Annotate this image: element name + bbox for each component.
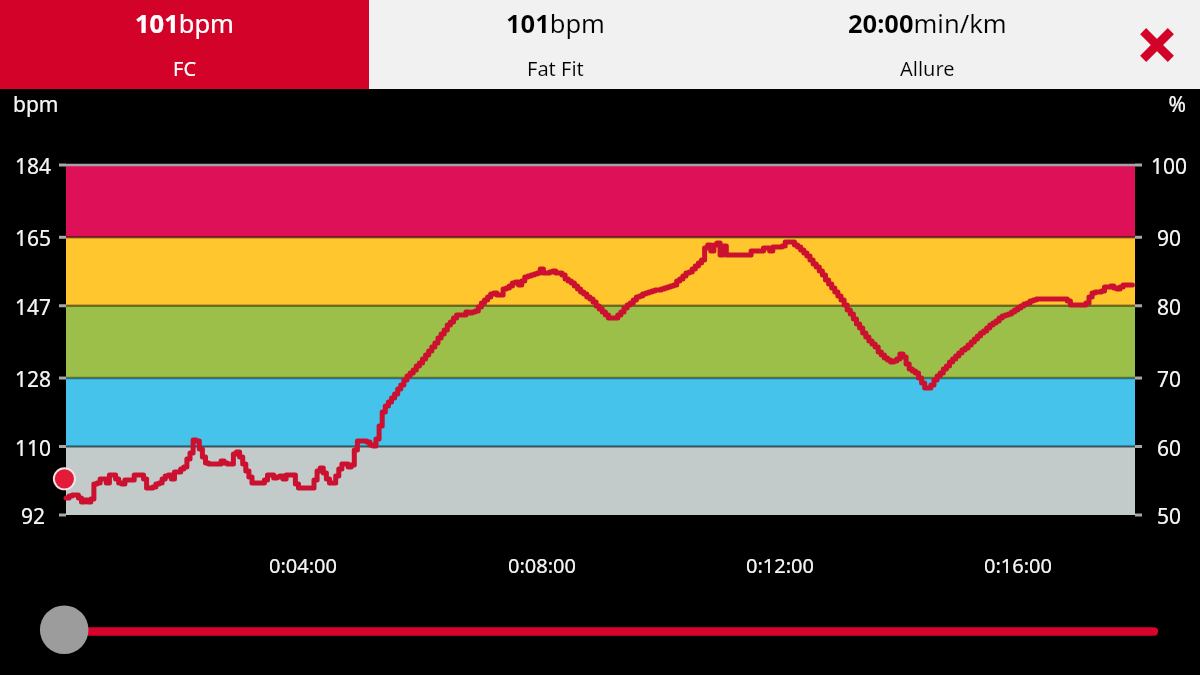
staticText: 0:08:00 [472, 552, 612, 579]
staticText: 50 [1109, 502, 1200, 531]
staticText: 90 [1109, 224, 1200, 253]
staticText: 100 [1109, 152, 1200, 181]
staticText: Allure [900, 55, 955, 82]
button[interactable]: 101bpm [0, 0, 369, 89]
staticText: 60 [1109, 434, 1200, 463]
staticText: 80 [1109, 293, 1200, 322]
staticText: 0:04:00 [233, 552, 373, 579]
staticText: bpm [13, 90, 93, 119]
button[interactable]: Close [1113, 0, 1200, 89]
staticText: 0:16:00 [948, 552, 1088, 579]
staticText: 147 [0, 293, 93, 322]
staticText: % [1110, 90, 1186, 119]
staticText: 165 [0, 224, 93, 253]
staticText: 101bpm [506, 6, 605, 41]
button[interactable]: Seek through workout [92, 612, 1162, 650]
staticText: 0:12:00 [710, 552, 850, 579]
staticText: 128 [0, 365, 93, 394]
staticText: FC [173, 55, 197, 82]
staticText: 92 [0, 502, 93, 531]
button[interactable]: Playback position handle [36, 600, 92, 656]
staticText: 101bpm [135, 6, 234, 41]
button[interactable]: Heart-rate zone graph [66, 165, 1135, 515]
button[interactable]: 20:00min/km [741, 0, 1113, 89]
staticText: 110 [0, 434, 93, 463]
staticText: 70 [1109, 365, 1200, 394]
staticText: Fat Fit [527, 55, 584, 82]
staticText: 184 [0, 152, 93, 181]
button[interactable]: 101bpm [369, 0, 741, 89]
staticText: 20:00min/km [848, 6, 1007, 41]
